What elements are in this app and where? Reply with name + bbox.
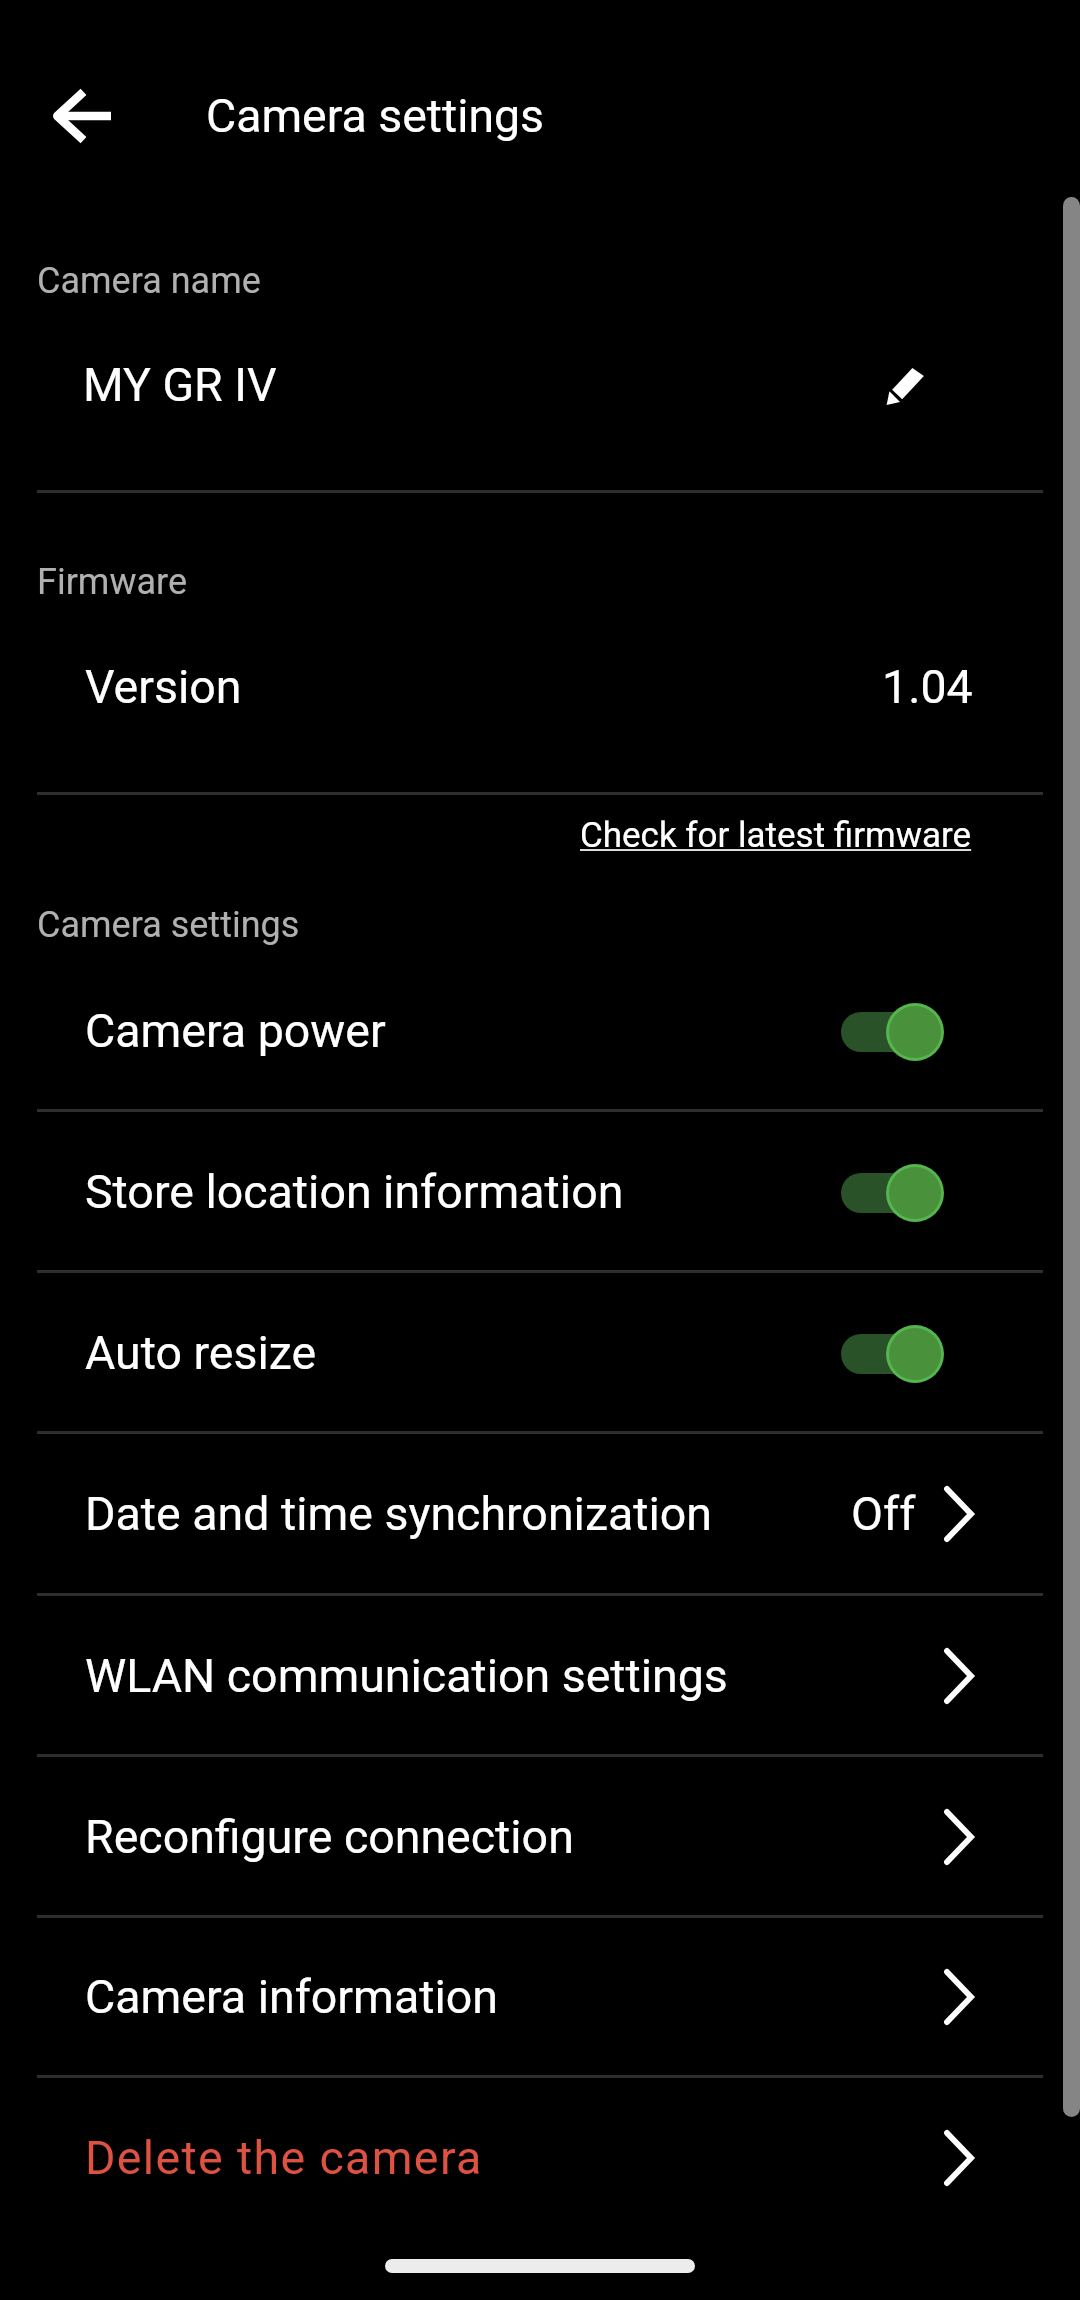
- staticText: Camera settings: [37, 904, 300, 946]
- button[interactable]: Delete the camera: [0, 2075, 1080, 2236]
- button[interactable]: MY GR IV: [0, 325, 1080, 440]
- staticText: Version: [85, 660, 242, 714]
- button[interactable]: Reconfigure connection: [0, 1754, 1080, 1915]
- staticText: Date and time synchronization: [85, 1487, 712, 1541]
- staticText: Camera power: [85, 1004, 386, 1058]
- button[interactable]: Edit camera name: [850, 331, 962, 443]
- button[interactable]: Date and time synchronization: [0, 1431, 1080, 1593]
- button[interactable]: Camera information: [0, 1915, 1080, 2075]
- button[interactable]: Check for latest firmware: [580, 815, 972, 856]
- button[interactable]: Back: [22, 56, 142, 176]
- staticText: Camera settings: [206, 89, 545, 143]
- button[interactable]: Camera power: [0, 948, 1080, 1109]
- button[interactable]: Auto resize: [0, 1270, 1080, 1431]
- staticText: WLAN communication settings: [85, 1649, 728, 1703]
- staticText: Auto resize: [85, 1326, 317, 1380]
- staticText: Reconfigure connection: [85, 1810, 574, 1864]
- staticText: Check for latest firmware: [580, 815, 972, 856]
- button[interactable]: Store location information: [0, 1109, 1080, 1270]
- staticText: Camera information: [85, 1970, 498, 2024]
- staticText: Store location information: [85, 1165, 624, 1219]
- staticText: Firmware: [37, 561, 188, 603]
- staticText: Delete the camera: [85, 2131, 483, 2185]
- staticText: MY GR IV: [83, 358, 277, 412]
- button[interactable]: WLAN communication settings: [0, 1593, 1080, 1754]
- staticText: Camera name: [37, 260, 261, 302]
- staticText: 1.04: [882, 660, 973, 714]
- staticText: Off: [851, 1487, 916, 1541]
